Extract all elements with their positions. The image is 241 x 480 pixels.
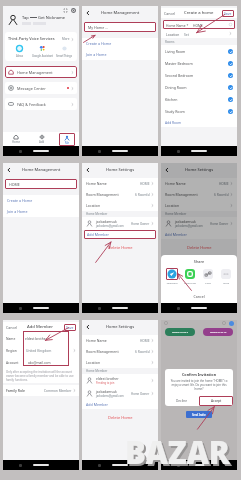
staticText: Add Member: [165, 232, 188, 237]
button[interactable]: Me: [59, 133, 75, 146]
button[interactable]: Location: [86, 200, 154, 211]
button[interactable]: Kitchen: [165, 93, 233, 105]
button[interactable]: eldest brother: [86, 374, 154, 387]
button[interactable]: Delete Home: [161, 245, 237, 250]
staticText: Rooms: [165, 40, 175, 44]
button[interactable]: Alexa: [8, 45, 31, 58]
staticText: Home Name: [86, 181, 107, 186]
other: Back: [85, 167, 91, 173]
button[interactable]: More: [218, 268, 234, 284]
button[interactable]: Accept: [199, 396, 233, 406]
button[interactable]: Location: [86, 357, 154, 368]
button[interactable]: Living Room: [165, 45, 233, 57]
button[interactable]: Account: [6, 356, 76, 368]
staticText: Home Member: [165, 212, 187, 216]
button[interactable]: Region: [6, 344, 76, 356]
button[interactable]: Study Room: [165, 105, 233, 117]
button[interactable]: Location: [166, 29, 232, 38]
button[interactable]: Location: [165, 200, 233, 211]
button[interactable]: HOME: [5, 179, 77, 189]
button[interactable]: Second Bedroom: [165, 69, 233, 81]
staticText: Home Management: [101, 10, 140, 15]
staticText: Join a Home: [86, 52, 107, 57]
button[interactable]: Name: [6, 332, 76, 344]
button[interactable]: Back: [164, 167, 170, 173]
button[interactable]: Create a Home: [82, 38, 158, 49]
button[interactable]: Telegram: [164, 268, 180, 284]
button[interactable]: Cancel: [6, 325, 18, 330]
button[interactable]: Back: [85, 324, 91, 330]
button[interactable]: Home Name: [86, 178, 154, 189]
button[interactable]: My Home ...: [84, 22, 156, 32]
button[interactable]: Delete Home: [82, 415, 158, 420]
button[interactable]: WhatsApp: [182, 268, 198, 284]
button[interactable]: Save: [224, 11, 232, 16]
button[interactable]: Save: [66, 325, 74, 330]
staticText: SmartThings: [54, 54, 74, 58]
staticText: Home Member: [86, 212, 108, 216]
staticText: Save: [66, 325, 74, 330]
button[interactable]: jackadamsuk: [86, 217, 154, 230]
button[interactable]: Home Name: [86, 335, 154, 346]
staticText: Message Center: [17, 86, 46, 91]
button[interactable]: Cancel: [164, 11, 176, 16]
button[interactable]: Home Name: [165, 178, 233, 189]
button[interactable]: jackadamsuk: [165, 217, 233, 230]
other: Back: [6, 167, 12, 173]
staticText: Set: [184, 32, 189, 36]
button[interactable]: Back: [85, 167, 91, 173]
staticText: jacksdams@gmail.com: [96, 394, 124, 398]
button[interactable]: Home: [3, 134, 29, 144]
button[interactable]: please off for a: [165, 328, 195, 336]
button[interactable]: Dining Room: [165, 81, 233, 93]
staticText: 6 Room(s): [135, 193, 150, 197]
button[interactable]: Message Center: [5, 82, 77, 94]
staticText: Share: [161, 259, 237, 264]
button[interactable]: Back: [85, 10, 91, 16]
staticText: Delete Home: [108, 415, 133, 420]
button[interactable]: Google Assistant: [31, 45, 54, 58]
staticText: Living Room: [165, 49, 186, 54]
button[interactable]: Room Management: [86, 189, 154, 200]
button[interactable]: Add Member: [84, 230, 156, 239]
staticText: Home Name *: [166, 23, 189, 27]
staticText: HOME: [193, 23, 203, 27]
staticText: Save: [224, 11, 232, 16]
button[interactable]: please go to se: [203, 328, 233, 336]
staticText: please go to se: [210, 331, 227, 334]
button[interactable]: Add Member: [161, 230, 237, 239]
button[interactable]: Master Bedroom: [165, 57, 233, 69]
button[interactable]: Settings: [71, 8, 76, 13]
button[interactable]: Home Management: [5, 66, 77, 78]
button[interactable]: Add Member: [82, 400, 158, 409]
button[interactable]: Add: [29, 134, 54, 144]
button[interactable]: Add Room: [165, 117, 233, 127]
button[interactable]: Tap: [7, 14, 75, 26]
staticText: Telegram: [164, 281, 180, 284]
button[interactable]: More: [62, 37, 74, 41]
button[interactable]: Family Role: [6, 385, 76, 396]
staticText: Add Member: [87, 232, 110, 237]
button[interactable]: SmartThings: [54, 45, 74, 58]
button[interactable]: FAQ & Feedback: [5, 98, 77, 110]
button[interactable]: Join a Home: [82, 49, 158, 60]
button[interactable]: Create a Home: [3, 195, 79, 206]
staticText: please off for a: [172, 331, 189, 334]
button[interactable]: Room Management: [86, 346, 154, 357]
button[interactable]: Copy: [200, 268, 216, 284]
button[interactable]: Decline: [165, 396, 199, 406]
button[interactable]: jackadamsuk: [86, 387, 154, 400]
button[interactable]: Cancel: [161, 294, 237, 299]
staticText: Location: [86, 360, 101, 365]
button[interactable]: Delete Home: [82, 245, 158, 250]
button[interactable]: Send Invite: [186, 411, 212, 418]
staticText: Room Management: [86, 192, 119, 197]
staticText: Accept: [211, 399, 222, 403]
button[interactable]: Scan: [63, 8, 68, 13]
staticText: Room Management: [165, 192, 198, 197]
staticText: BAZAR: [127, 433, 232, 475]
button[interactable]: Back: [6, 167, 12, 173]
button[interactable]: Room Management: [165, 189, 233, 200]
button[interactable]: Join a Home: [3, 206, 79, 217]
staticText: Tap: [22, 15, 29, 20]
